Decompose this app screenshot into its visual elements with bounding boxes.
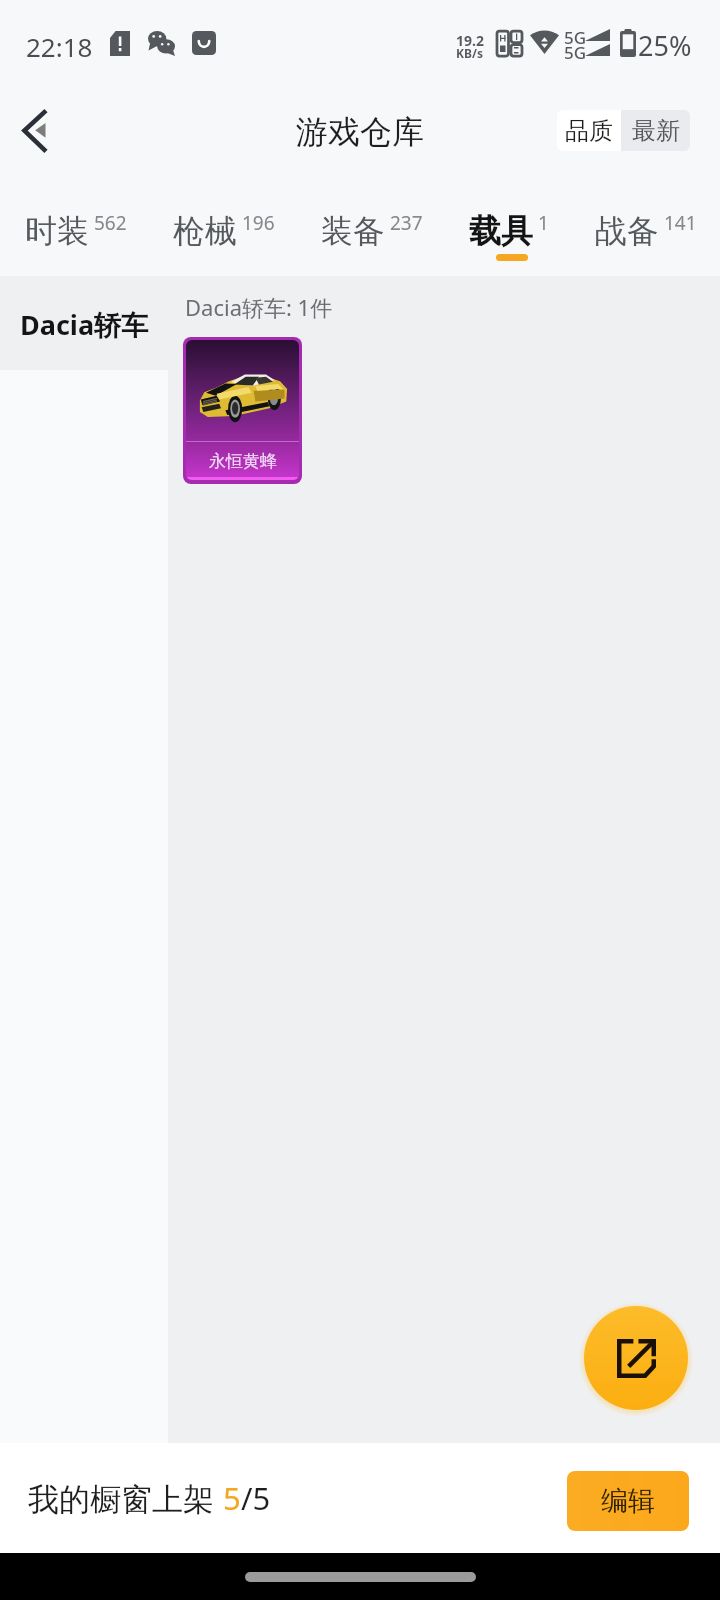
- staticText: /5: [241, 1477, 271, 1519]
- staticText: 编辑: [601, 1484, 655, 1518]
- staticText: 5G: [564, 26, 587, 49]
- button[interactable]: 永恒黄蜂: [183, 337, 302, 484]
- staticText: 载具: [469, 211, 533, 251]
- staticText: 永恒黄蜂: [209, 451, 277, 472]
- staticText: 我的橱窗上架: [28, 1477, 223, 1519]
- button[interactable]: 载具: [469, 180, 549, 276]
- staticText: 22:18: [26, 29, 93, 64]
- staticText: 141: [664, 210, 697, 236]
- button[interactable]: Open in new window: [584, 1306, 688, 1410]
- staticText: 5G: [564, 41, 587, 64]
- staticText: 237: [390, 210, 423, 236]
- button[interactable]: Dacia轿车: [0, 276, 168, 370]
- staticText: 19.2: [456, 31, 484, 50]
- staticText: 枪械: [173, 211, 237, 251]
- staticText: 最新: [632, 116, 680, 146]
- other: Open in new: [617, 1339, 656, 1378]
- staticText: KB/s: [456, 45, 483, 61]
- button[interactable]: 战备: [595, 180, 697, 276]
- button[interactable]: 枪械: [173, 180, 275, 276]
- staticText: 游戏仓库: [296, 112, 424, 152]
- staticText: 562: [94, 210, 127, 236]
- button[interactable]: Back: [3, 100, 65, 162]
- button[interactable]: 最新: [621, 110, 690, 151]
- staticText: 1: [538, 210, 549, 236]
- staticText: 装备: [321, 211, 385, 251]
- staticText: Dacia轿车: 1件: [185, 292, 333, 322]
- staticText: 战备: [595, 211, 659, 251]
- button[interactable]: 时装: [25, 180, 127, 276]
- button[interactable]: 品质: [557, 110, 621, 151]
- button[interactable]: 编辑: [567, 1471, 689, 1531]
- staticText: 25%: [638, 27, 692, 64]
- staticText: Dacia轿车: [20, 306, 149, 343]
- staticText: 5: [223, 1477, 241, 1519]
- staticText: 196: [242, 210, 275, 236]
- button[interactable]: 装备: [321, 180, 423, 276]
- staticText: 品质: [565, 116, 613, 146]
- staticText: 时装: [25, 211, 89, 251]
